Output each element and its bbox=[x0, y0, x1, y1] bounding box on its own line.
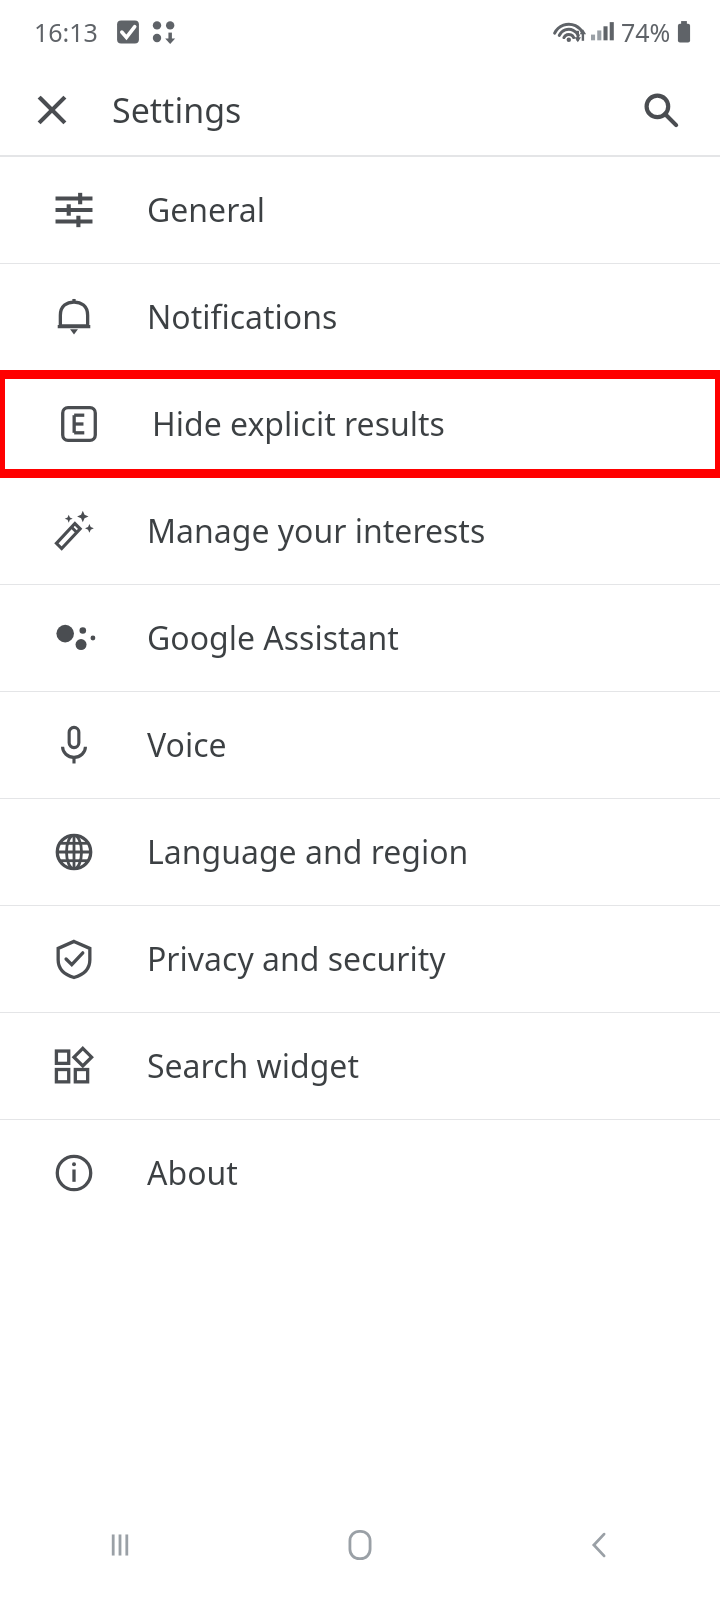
staticText: General bbox=[147, 188, 265, 232]
staticText: Voice bbox=[147, 723, 227, 767]
staticText: Settings bbox=[112, 87, 242, 133]
staticText: Google Assistant bbox=[147, 616, 399, 660]
button[interactable]: General bbox=[0, 157, 720, 263]
button[interactable]: Manage your interests bbox=[0, 478, 720, 584]
button[interactable]: Voice bbox=[0, 692, 720, 798]
button[interactable]: Search widget bbox=[0, 1013, 720, 1119]
button[interactable]: Google Assistant bbox=[0, 585, 720, 691]
staticText: 16:13 bbox=[34, 15, 98, 49]
button[interactable]: About bbox=[0, 1120, 720, 1226]
button[interactable]: Close bbox=[20, 78, 84, 142]
staticText: Search widget bbox=[147, 1044, 359, 1088]
staticText: Privacy and security bbox=[147, 937, 446, 981]
staticText: Notifications bbox=[147, 295, 338, 339]
staticText: About bbox=[147, 1151, 238, 1195]
button[interactable]: Search bbox=[629, 78, 693, 142]
button[interactable]: Recents bbox=[0, 1490, 240, 1600]
button[interactable]: Back bbox=[480, 1490, 720, 1600]
button[interactable]: Notifications bbox=[0, 264, 720, 370]
button[interactable]: Home bbox=[240, 1490, 480, 1600]
staticText: Manage your interests bbox=[147, 509, 486, 553]
button[interactable]: Hide explicit results bbox=[5, 379, 715, 469]
staticText: 74% bbox=[621, 15, 671, 49]
button[interactable]: Privacy and security bbox=[0, 906, 720, 1012]
staticText: Hide explicit results bbox=[152, 402, 445, 446]
button[interactable]: Language and region bbox=[0, 799, 720, 905]
staticText: Language and region bbox=[147, 830, 469, 874]
